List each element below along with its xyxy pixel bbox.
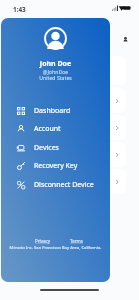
- staticText: Devices: [34, 143, 59, 153]
- button[interactable]: Privacy: [35, 238, 51, 244]
- staticText: Dashboard: [34, 106, 71, 116]
- staticText: @JohnDoe: [1, 68, 110, 75]
- button[interactable]: Account: [118, 32, 133, 47]
- staticText: United States: [1, 74, 110, 81]
- button[interactable]: [8, 88, 126, 113]
- staticText: Disconnect Device: [34, 180, 94, 190]
- button[interactable]: Terms: [70, 238, 83, 244]
- button[interactable]: [8, 142, 126, 167]
- button[interactable]: [8, 115, 126, 140]
- staticText: 1:43: [13, 5, 26, 14]
- staticText: Account: [34, 124, 61, 134]
- button[interactable]: [8, 169, 126, 194]
- button[interactable]: Devices: [1, 138, 110, 157]
- button[interactable]: Disconnect Device: [1, 175, 110, 194]
- button[interactable]: Account: [1, 119, 110, 138]
- staticText: Recovery Key: [34, 161, 78, 171]
- button[interactable]: [8, 56, 126, 85]
- button[interactable]: Recovery Key: [1, 156, 110, 175]
- button[interactable]: Dashboard: [1, 101, 110, 120]
- staticText: John Doe: [1, 59, 110, 69]
- staticText: Mirvato Inc. San Francisco Bay Area, Cal…: [1, 245, 110, 251]
